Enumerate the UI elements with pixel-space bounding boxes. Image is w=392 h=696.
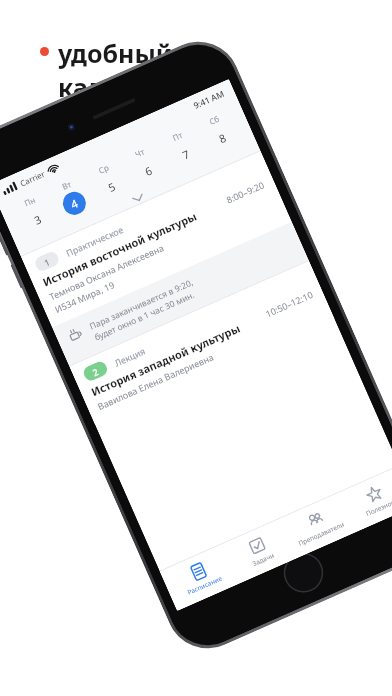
button[interactable]: История западной культуры: [89, 288, 322, 412]
button[interactable]: Пн: [11, 188, 58, 239]
staticText: 4: [68, 195, 81, 212]
staticText: 8:00–9:20: [224, 178, 266, 206]
staticText: Расписание: [186, 574, 223, 597]
staticText: Пара заканчивается в 9:20, будет окно в …: [88, 276, 200, 343]
staticText: 5: [106, 178, 118, 195]
button[interactable]: Чт: [121, 139, 169, 190]
staticText: Пт: [171, 129, 184, 143]
button[interactable]: История восточной культуры: [40, 178, 279, 315]
staticText: 8: [216, 130, 229, 146]
staticText: Вавилова Елена Валериевна: [95, 350, 216, 412]
staticText: Темнова Оксана Алексеевна: [47, 241, 166, 302]
staticText: удобный: [58, 36, 173, 70]
staticText: 9:41 AM: [191, 88, 226, 112]
button[interactable]: Преподаватели: [284, 499, 350, 551]
staticText: 3: [32, 211, 44, 228]
staticText: Ср: [97, 162, 110, 176]
staticText: календарь: [58, 70, 196, 104]
staticText: История восточной культуры: [40, 208, 199, 289]
staticText: Вт: [60, 178, 73, 192]
staticText: Преподаватели: [297, 520, 346, 548]
staticText: Лекция: [112, 344, 147, 369]
button[interactable]: Расписание: [167, 550, 233, 603]
button[interactable]: Ср: [85, 155, 132, 206]
staticText: И534 Мира, 19: [53, 278, 116, 315]
staticText: занятий: [58, 104, 164, 138]
button[interactable]: Задачи: [226, 525, 292, 577]
staticText: Чт: [133, 145, 147, 160]
button[interactable]: Сб: [195, 106, 243, 157]
staticText: Практическое: [64, 223, 126, 259]
staticText: 10:50–12:10: [263, 288, 315, 319]
button[interactable]: Вт: [47, 171, 95, 223]
staticText: Сб: [207, 113, 221, 127]
button[interactable]: Пара заканчивается в 9:20, будет окно в …: [67, 235, 294, 353]
staticText: Carrier: [18, 168, 47, 189]
staticText: Пн: [22, 194, 37, 208]
staticText: История западной культуры: [89, 320, 243, 399]
staticText: Полезное: [364, 497, 392, 518]
staticText: 6: [142, 162, 155, 179]
button[interactable]: Полезное: [343, 473, 392, 526]
button[interactable]: Пт: [159, 122, 207, 173]
staticText: 1: [42, 255, 52, 268]
staticText: 7: [180, 146, 192, 162]
staticText: 2: [90, 365, 101, 378]
staticText: Задачи: [251, 551, 275, 568]
